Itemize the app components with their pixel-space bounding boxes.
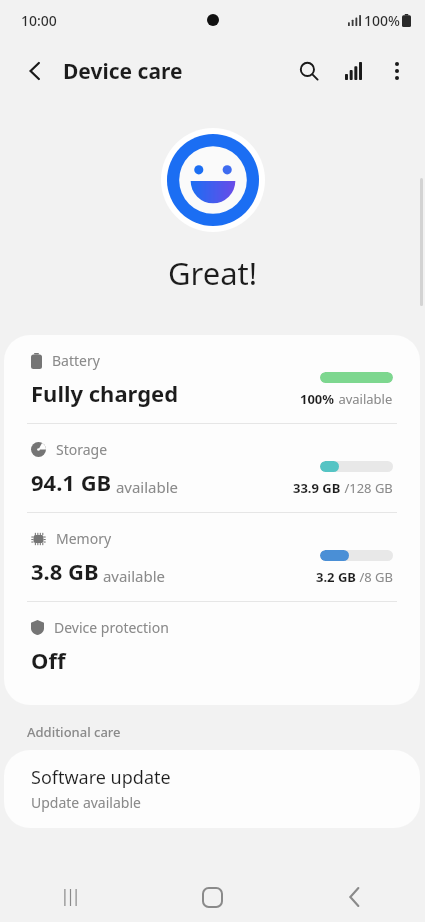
staticText: Fully charged: [31, 378, 179, 408]
button[interactable]: Back: [14, 49, 58, 93]
staticText: /128 GB: [341, 479, 393, 497]
button[interactable]: Memory: [4, 513, 420, 601]
button[interactable]: Back: [283, 872, 425, 922]
staticText: 33.9 GB: [293, 479, 341, 497]
staticText: Battery: [52, 351, 100, 370]
button[interactable]: Battery: [4, 335, 420, 423]
button[interactable]: Home: [141, 872, 283, 922]
staticText: available: [112, 477, 179, 497]
staticText: Additional care: [27, 723, 121, 741]
button[interactable]: More options: [375, 49, 419, 93]
staticText: Storage: [56, 440, 108, 459]
staticText: Software update: [31, 765, 171, 790]
staticText: 3.8 GB: [31, 556, 99, 586]
staticText: available: [335, 390, 393, 408]
button[interactable]: Storage: [4, 424, 420, 512]
staticText: Great!: [0, 252, 425, 294]
button[interactable]: Software update: [4, 750, 420, 828]
staticText: Memory: [56, 529, 112, 548]
button[interactable]: Usage statistics: [331, 49, 375, 93]
staticText: available: [99, 566, 166, 586]
staticText: 94.1 GB: [31, 467, 112, 497]
staticText: Off: [31, 645, 66, 675]
staticText: 100%: [300, 390, 335, 408]
staticText: 100%: [364, 11, 400, 30]
staticText: 3.2 GB: [316, 568, 356, 586]
staticText: Device protection: [54, 618, 169, 637]
staticText: Device care: [63, 57, 183, 86]
staticText: 10:00: [21, 11, 57, 30]
button[interactable]: Device protection: [4, 602, 420, 705]
staticText: /8 GB: [356, 568, 393, 586]
button[interactable]: Recent apps: [0, 872, 141, 922]
staticText: Update available: [31, 793, 141, 812]
button[interactable]: Search: [287, 49, 331, 93]
